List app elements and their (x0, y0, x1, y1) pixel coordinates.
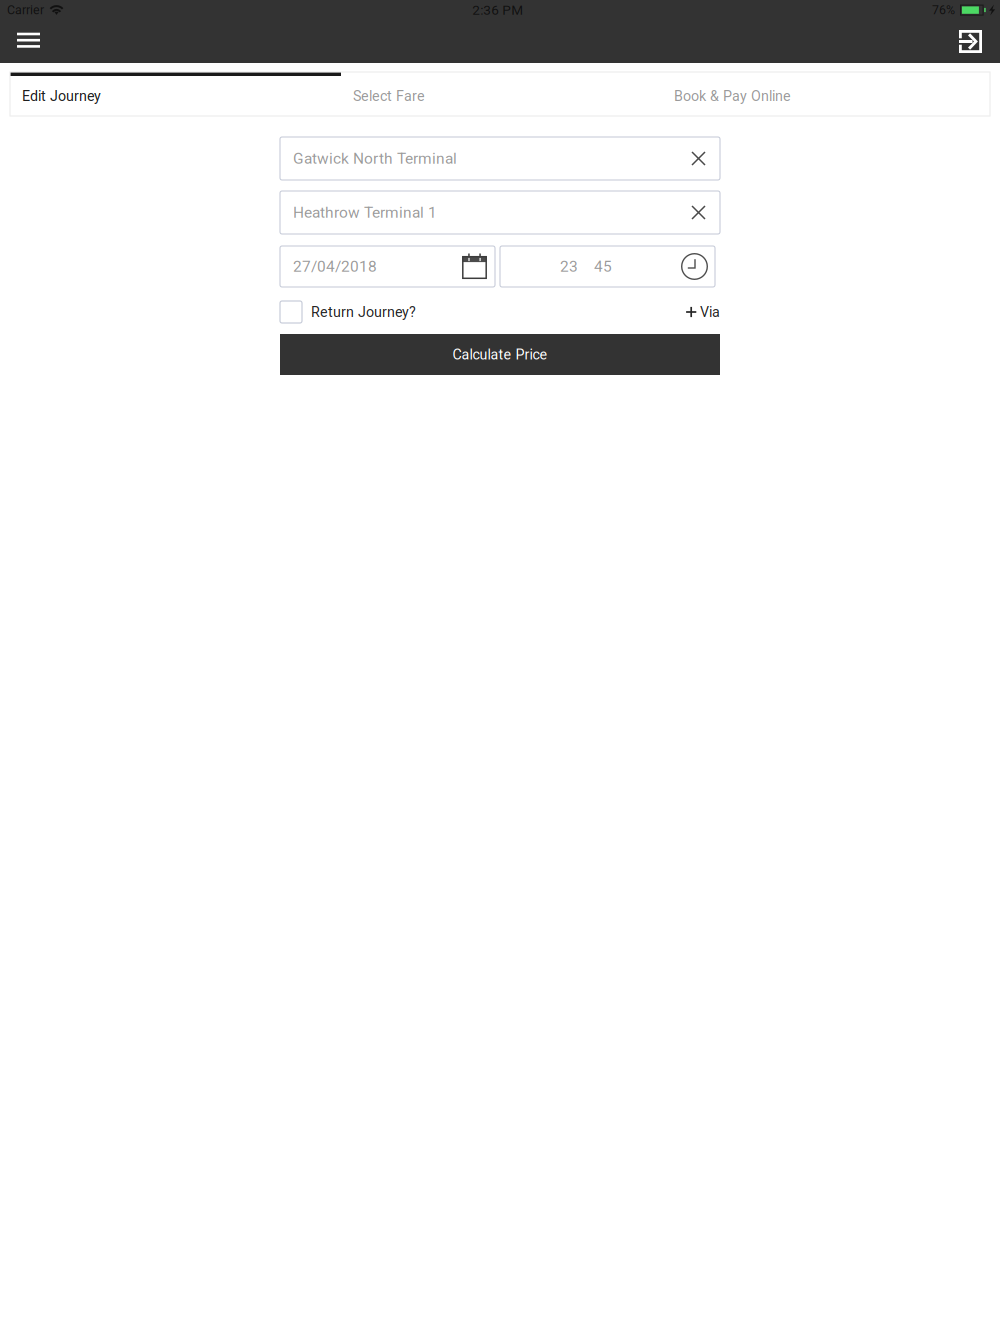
staticText: 2:36 PM (472, 2, 523, 18)
button[interactable]: Clear destination (692, 206, 705, 219)
button[interactable]: Return Journey? (280, 300, 416, 323)
staticText: Via (700, 304, 720, 320)
button[interactable]: Log out (949, 20, 992, 63)
staticText: 27/04/2018 (293, 257, 377, 275)
staticText: Edit Journey (22, 88, 101, 104)
staticText: Heathrow Terminal 1 (293, 203, 437, 221)
staticText: 76% (932, 3, 955, 17)
button[interactable]: Pick date (462, 253, 487, 279)
staticText: Book & Pay Online (674, 88, 791, 104)
button[interactable]: Calculate Price (280, 334, 720, 375)
staticText: Calculate Price (452, 346, 547, 363)
button[interactable]: Edit Journey (10, 72, 341, 116)
button[interactable]: Select Fare (341, 72, 662, 116)
button[interactable]: Pick time (681, 253, 708, 280)
button[interactable]: Book & Pay Online (662, 72, 990, 116)
button[interactable]: Clear pickup location (692, 152, 705, 165)
staticText: 45 (594, 257, 612, 275)
staticText: 23 (560, 257, 578, 275)
staticText: Gatwick North Terminal (293, 149, 457, 167)
staticText: Return Journey? (311, 304, 416, 320)
button[interactable]: Via (686, 300, 720, 323)
staticText: Select Fare (353, 88, 425, 104)
staticText: Carrier (7, 3, 44, 17)
button[interactable]: Menu (7, 20, 50, 63)
